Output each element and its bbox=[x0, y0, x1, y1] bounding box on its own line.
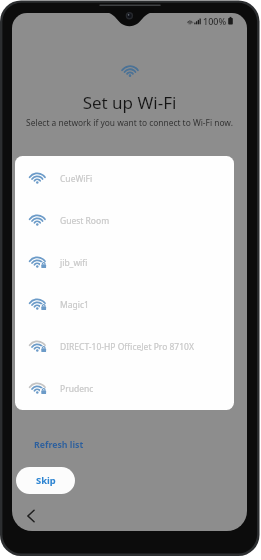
button[interactable]: Refresh list bbox=[31, 437, 87, 453]
button[interactable]: Skip bbox=[16, 467, 75, 494]
button[interactable]: Guest Room bbox=[15, 198, 234, 240]
button[interactable]: jib_wifi bbox=[15, 240, 234, 282]
staticText: Skip bbox=[36, 474, 56, 487]
button[interactable]: Magic1 bbox=[15, 282, 234, 324]
staticText: Prudenc bbox=[60, 383, 94, 395]
staticText: Select a network if you want to connect … bbox=[12, 117, 247, 128]
staticText: Refresh list bbox=[34, 439, 84, 451]
button[interactable]: DIRECT-10-HP OfficeJet Pro 8710X bbox=[15, 324, 234, 366]
button[interactable]: Prudenc bbox=[15, 366, 234, 408]
staticText: CueWiFi bbox=[60, 173, 93, 185]
staticText: Guest Room bbox=[60, 215, 110, 227]
staticText: Magic1 bbox=[60, 299, 89, 311]
staticText: DIRECT-10-HP OfficeJet Pro 8710X bbox=[60, 341, 194, 353]
staticText: Set up Wi-Fi bbox=[12, 91, 247, 114]
staticText: 100% bbox=[203, 15, 227, 27]
button[interactable]: CueWiFi bbox=[15, 156, 234, 198]
staticText: jib_wifi bbox=[60, 257, 88, 269]
button[interactable]: Back bbox=[21, 506, 41, 526]
